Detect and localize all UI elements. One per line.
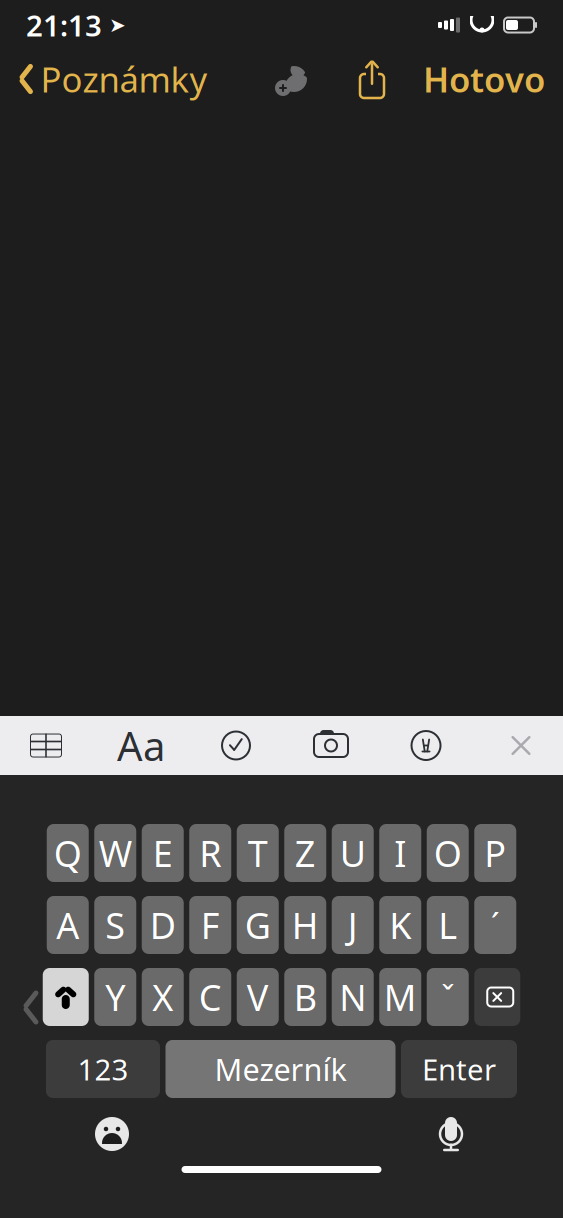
button[interactable]: K: [379, 896, 421, 954]
staticText: Z: [295, 829, 316, 877]
staticText: 123: [77, 1049, 128, 1088]
button[interactable]: M: [379, 968, 421, 1026]
staticText: J: [348, 901, 358, 949]
staticText: Q: [54, 829, 82, 877]
staticText: R: [199, 829, 221, 877]
button[interactable]: Camera: [303, 716, 359, 774]
button[interactable]: L: [427, 896, 469, 954]
staticText: Aa: [117, 719, 165, 772]
staticText: Enter: [422, 1049, 496, 1088]
staticText: A: [56, 901, 79, 949]
button[interactable]: Collapse Keyboard: [0, 917, 62, 1097]
button[interactable]: Text Format: [113, 716, 169, 774]
button[interactable]: Share: [347, 57, 397, 101]
button[interactable]: P: [474, 824, 516, 882]
staticText: I: [394, 829, 406, 877]
button[interactable]: T: [237, 824, 279, 882]
button[interactable]: G: [237, 896, 279, 954]
button[interactable]: H: [284, 896, 326, 954]
staticText: W: [99, 829, 132, 877]
button[interactable]: Checklist: [208, 716, 264, 774]
staticText: D: [150, 901, 176, 949]
button[interactable]: Mezerník: [165, 1040, 395, 1098]
button[interactable]: 123: [46, 1040, 160, 1098]
button[interactable]: J: [332, 896, 374, 954]
staticText: H: [292, 901, 319, 949]
button[interactable]: Close Keyboard: [493, 716, 549, 774]
button[interactable]: C: [189, 968, 231, 1026]
button[interactable]: Dictation: [419, 1108, 483, 1160]
button[interactable]: Y: [94, 968, 136, 1026]
staticText: S: [105, 901, 125, 949]
button[interactable]: ˇ: [427, 968, 469, 1026]
staticText: L: [438, 901, 457, 949]
button[interactable]: S: [94, 896, 136, 954]
button[interactable]: Markup: [398, 716, 454, 774]
staticText: 21:13: [26, 5, 102, 44]
button[interactable]: F: [189, 896, 231, 954]
staticText: F: [201, 901, 220, 949]
staticText: Y: [105, 973, 125, 1021]
button[interactable]: Table: [18, 716, 74, 774]
staticText: K: [389, 901, 411, 949]
button[interactable]: Add People: [269, 57, 319, 101]
button[interactable]: B: [284, 968, 326, 1026]
staticText: X: [152, 973, 173, 1021]
staticText: C: [199, 973, 222, 1021]
staticText: O: [434, 829, 462, 877]
button[interactable]: ´: [474, 896, 516, 954]
button[interactable]: D: [142, 896, 184, 954]
button[interactable]: R: [189, 824, 231, 882]
button[interactable]: O: [427, 824, 469, 882]
staticText: Hotovo: [423, 56, 545, 102]
staticText: G: [245, 901, 271, 949]
staticText: ➤: [102, 14, 126, 36]
button[interactable]: Hotovo: [397, 48, 545, 110]
button[interactable]: X: [142, 968, 184, 1026]
staticText: E: [153, 829, 173, 877]
button[interactable]: E: [142, 824, 184, 882]
button[interactable]: W: [94, 824, 136, 882]
staticText: T: [248, 829, 268, 877]
staticText: N: [339, 973, 366, 1021]
staticText: ˇ: [441, 976, 454, 1018]
button[interactable]: Z: [284, 824, 326, 882]
staticText: Mezerník: [214, 1049, 346, 1089]
button[interactable]: A: [47, 896, 89, 954]
button[interactable]: Enter: [401, 1040, 517, 1098]
button[interactable]: Delete: [474, 968, 520, 1026]
button[interactable]: N: [332, 968, 374, 1026]
button[interactable]: V: [237, 968, 279, 1026]
staticText: U: [340, 829, 366, 877]
button[interactable]: U: [332, 824, 374, 882]
staticText: Poznámky: [40, 56, 207, 102]
button[interactable]: Emoji: [80, 1108, 144, 1160]
button[interactable]: I: [379, 824, 421, 882]
staticText: ´: [491, 904, 500, 946]
button[interactable]: Shift: [43, 968, 89, 1026]
button[interactable]: Q: [47, 824, 89, 882]
staticText: V: [247, 973, 269, 1021]
staticText: P: [484, 829, 506, 877]
staticText: M: [384, 973, 417, 1021]
staticText: B: [294, 973, 317, 1021]
button[interactable]: Poznámky: [18, 48, 207, 110]
